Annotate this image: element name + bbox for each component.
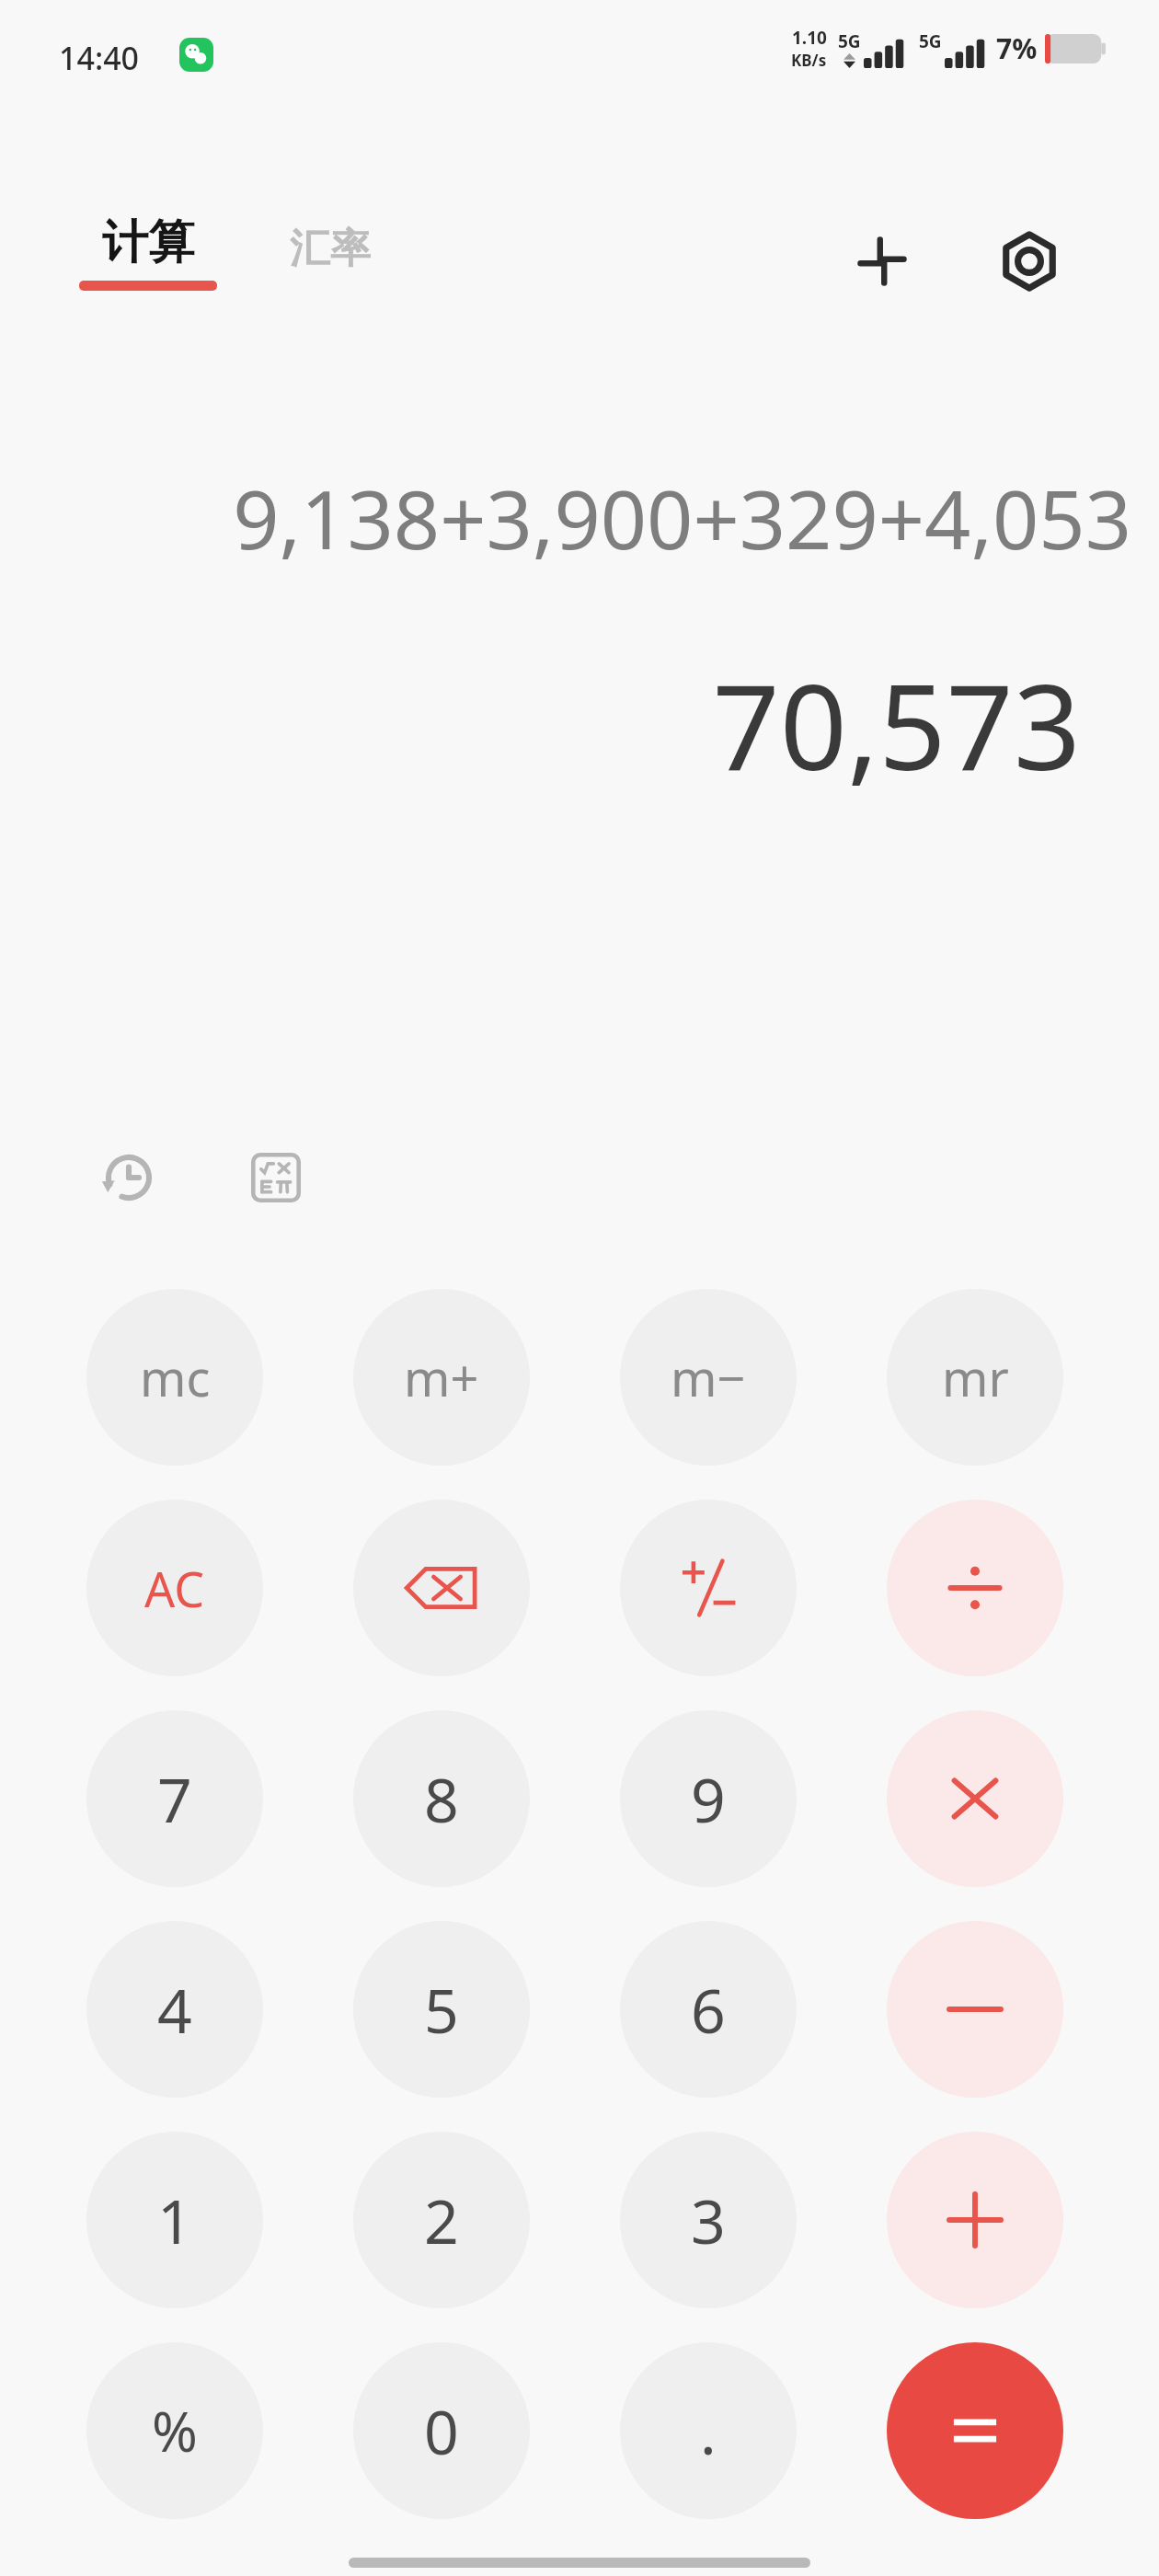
button[interactable]: 6	[620, 1921, 797, 2098]
button[interactable]: 汇率	[281, 218, 380, 280]
staticText: 14:40	[59, 37, 140, 79]
staticText: 1	[157, 2179, 192, 2261]
button[interactable]: Floating window	[832, 212, 932, 311]
staticText: 70,573	[0, 644, 1081, 804]
staticText: 9,138+3,900+329+4,053	[28, 463, 1131, 573]
button[interactable]: Settings	[980, 212, 1079, 311]
staticText: 7%	[996, 29, 1038, 67]
staticText: 8	[424, 1757, 459, 1840]
button[interactable]: Minus	[887, 1921, 1063, 2098]
button[interactable]: mc	[86, 1289, 263, 1466]
button[interactable]: 计算	[72, 210, 224, 294]
button[interactable]: Equals	[887, 2342, 1063, 2519]
staticText: mc	[140, 1343, 211, 1411]
staticText: 5	[424, 1968, 459, 2051]
button[interactable]: 9	[620, 1710, 797, 1887]
button[interactable]: History	[88, 1137, 169, 1218]
button[interactable]: %	[86, 2342, 263, 2519]
staticText: mr	[942, 1343, 1009, 1411]
staticText: 5G	[919, 29, 942, 53]
button[interactable]: Toggle sign	[620, 1500, 797, 1676]
button[interactable]: Multiply	[887, 1710, 1063, 1887]
button[interactable]: 1	[86, 2132, 263, 2308]
button[interactable]: .	[620, 2342, 797, 2519]
staticText: 汇率	[290, 224, 371, 274]
staticText: 0	[424, 2389, 459, 2472]
button[interactable]: 2	[353, 2132, 530, 2308]
button[interactable]: 0	[353, 2342, 530, 2519]
button[interactable]: Backspace	[353, 1500, 530, 1676]
staticText: 3	[691, 2179, 726, 2261]
staticText: .	[700, 2389, 717, 2472]
staticText: %	[152, 2393, 198, 2468]
button[interactable]: m+	[353, 1289, 530, 1466]
button[interactable]: Plus	[887, 2132, 1063, 2308]
staticText: 2	[424, 2179, 459, 2261]
button[interactable]: Scientific mode	[235, 1137, 316, 1218]
staticText: m−	[671, 1343, 746, 1411]
staticText: 9	[691, 1757, 726, 1840]
button[interactable]: 4	[86, 1921, 263, 2098]
staticText: 5G	[838, 29, 861, 53]
staticText: m+	[404, 1343, 479, 1411]
button[interactable]: AC	[86, 1500, 263, 1676]
staticText: 7	[157, 1757, 192, 1840]
button[interactable]: mr	[887, 1289, 1063, 1466]
staticText: 计算	[102, 213, 194, 271]
staticText: 1.10	[792, 26, 827, 50]
staticText: 4	[157, 1968, 192, 2051]
staticText: 6	[691, 1968, 726, 2051]
button[interactable]: m−	[620, 1289, 797, 1466]
staticText: KB/s	[791, 50, 827, 71]
button[interactable]: 8	[353, 1710, 530, 1887]
button[interactable]: 7	[86, 1710, 263, 1887]
button[interactable]: 5	[353, 1921, 530, 2098]
staticText: AC	[144, 1556, 205, 1621]
button[interactable]: Divide	[887, 1500, 1063, 1676]
button[interactable]: 3	[620, 2132, 797, 2308]
